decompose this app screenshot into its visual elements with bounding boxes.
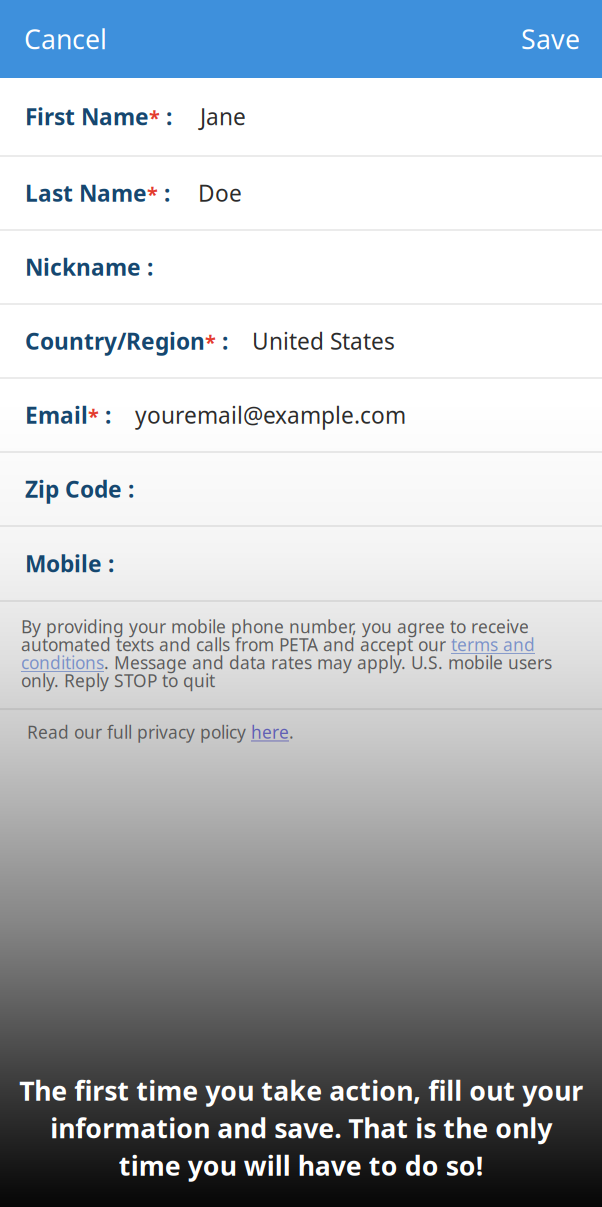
staticText: : — [122, 474, 134, 504]
staticText: Email — [25, 400, 88, 430]
button[interactable]: Mobile — [0, 527, 602, 600]
button[interactable]: First Name — [0, 78, 602, 155]
staticText: First Name — [25, 101, 149, 131]
staticText: Country/Region — [25, 326, 205, 356]
staticText: Save — [521, 21, 580, 57]
staticText: : — [102, 548, 114, 578]
staticText: Jane — [200, 101, 246, 131]
button[interactable]: Country/Region — [0, 305, 602, 377]
staticText: Cancel — [24, 21, 107, 57]
staticText: * — [147, 181, 158, 207]
button[interactable]: Save — [503, 7, 602, 71]
staticText: * — [88, 403, 99, 429]
staticText: * — [149, 104, 160, 131]
staticText: United States — [252, 326, 395, 356]
staticText: Nickname — [25, 252, 141, 282]
button[interactable]: Nickname — [0, 231, 602, 303]
staticText: : — [141, 252, 153, 282]
button[interactable]: Read our full privacy policy here. — [0, 710, 602, 754]
staticText: The first time you take action, fill out… — [19, 1073, 583, 1183]
staticText: Read our full privacy policy here. — [27, 721, 294, 744]
staticText: : — [216, 326, 228, 356]
button[interactable]: Email — [0, 379, 602, 451]
button[interactable]: Zip Code — [0, 453, 602, 525]
staticText: Last Name — [25, 178, 147, 208]
staticText: : — [99, 400, 111, 430]
button[interactable]: Cancel — [0, 7, 125, 71]
staticText: : — [158, 178, 170, 208]
staticText: Zip Code — [25, 474, 122, 504]
staticText: By providing your mobile phone number, y… — [21, 615, 552, 692]
button[interactable]: Last Name — [0, 157, 602, 229]
staticText: youremail@example.com — [135, 400, 406, 430]
staticText: * — [205, 329, 216, 355]
staticText: Mobile — [25, 548, 102, 578]
staticText: Doe — [198, 178, 242, 208]
staticText: : — [160, 101, 172, 131]
